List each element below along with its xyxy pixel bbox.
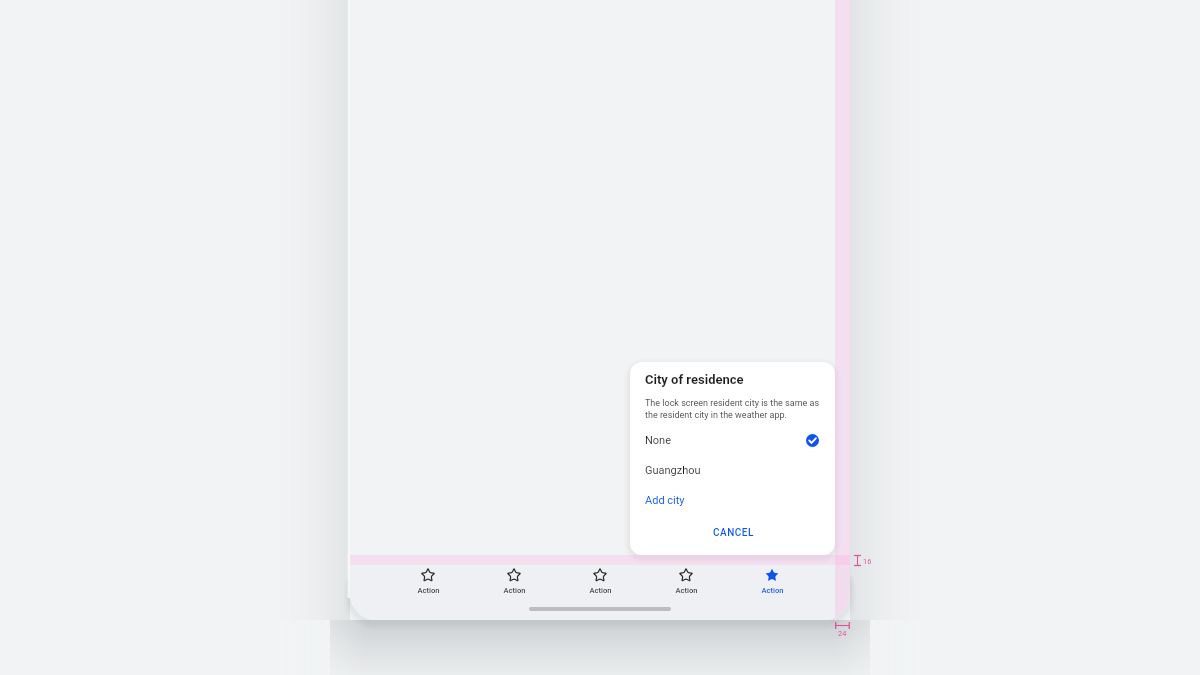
button[interactable]: Action [484, 565, 544, 620]
staticText: CANCEL [713, 527, 754, 539]
other: Action [765, 568, 779, 582]
button[interactable]: Action [570, 565, 630, 620]
button[interactable]: Guangzhou [630, 456, 835, 484]
staticText: Action [503, 586, 526, 595]
staticText: None [645, 434, 672, 447]
staticText: Guangzhou [645, 464, 701, 477]
staticText: The lock screen resident city is the sam… [645, 398, 827, 420]
button[interactable]: Add city [630, 486, 835, 514]
staticText: Action [675, 586, 698, 595]
button[interactable]: None [630, 426, 835, 454]
other: Action [421, 568, 435, 582]
staticText: 16 [863, 557, 872, 566]
staticText: Action [417, 586, 440, 595]
button[interactable]: Action [742, 565, 802, 620]
button[interactable]: CANCEL [707, 523, 760, 543]
staticText: Add city [645, 494, 685, 507]
other: Action [679, 568, 693, 582]
button[interactable]: Action [398, 565, 458, 620]
staticText: 24 [838, 629, 847, 638]
staticText: Action [761, 586, 784, 595]
other: Action [593, 568, 607, 582]
staticText: Action [589, 586, 612, 595]
button[interactable]: Action [656, 565, 716, 620]
other: Action [507, 568, 521, 582]
staticText: City of residence [645, 372, 744, 387]
